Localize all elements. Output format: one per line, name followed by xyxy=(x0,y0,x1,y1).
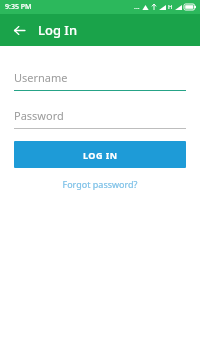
button[interactable]: Username xyxy=(14,70,186,91)
staticText: LOG IN xyxy=(83,149,118,161)
staticText: Log In xyxy=(38,21,78,39)
button[interactable]: LOG IN xyxy=(14,141,186,168)
staticText: Password xyxy=(14,108,64,123)
button[interactable]: Password xyxy=(14,108,186,129)
staticText: ... xyxy=(134,2,140,12)
button[interactable]: Forgot password? xyxy=(14,178,186,190)
staticText: Forgot password? xyxy=(62,178,138,190)
staticText: H xyxy=(168,3,173,11)
staticText: Username xyxy=(14,70,68,85)
staticText: 9:35 PM xyxy=(5,2,32,12)
button[interactable]: Back xyxy=(7,18,31,42)
